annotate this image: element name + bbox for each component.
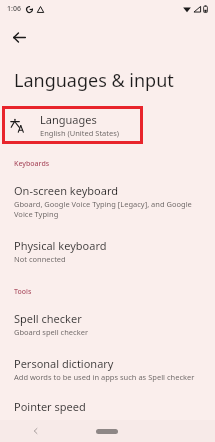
staticText: Tools (14, 287, 32, 297)
button[interactable]: Pointer speed (0, 397, 215, 414)
staticText: Physical keyboard (14, 238, 107, 253)
staticText: On-screen keyboard (14, 183, 119, 198)
button[interactable]: Home (71, 420, 143, 442)
staticText: Pointer speed (14, 399, 86, 414)
button[interactable]: On-screen keyboard (0, 178, 215, 224)
staticText: English (United States) (40, 128, 120, 138)
staticText: Spell checker (14, 311, 82, 326)
button[interactable]: Back (0, 420, 71, 442)
staticText: Personal dictionary (14, 356, 114, 371)
button[interactable]: Languages (2, 106, 143, 144)
staticText: Languages & input (14, 68, 174, 93)
staticText: 1:06 (7, 4, 21, 14)
button[interactable]: Spell checker (0, 306, 215, 342)
button[interactable]: Physical keyboard (0, 233, 215, 269)
staticText: Not connected (14, 254, 66, 264)
staticText: Add words to be used in apps such as Spe… (14, 372, 195, 382)
button[interactable]: Personal dictionary (0, 351, 215, 387)
staticText: Keyboards (14, 159, 50, 169)
staticText: Languages (40, 112, 97, 127)
staticText: Gboard spell checker (14, 327, 88, 337)
button[interactable]: Back (6, 24, 32, 50)
staticText: Gboard, Google Voice Typing [Legacy], an… (14, 199, 201, 219)
